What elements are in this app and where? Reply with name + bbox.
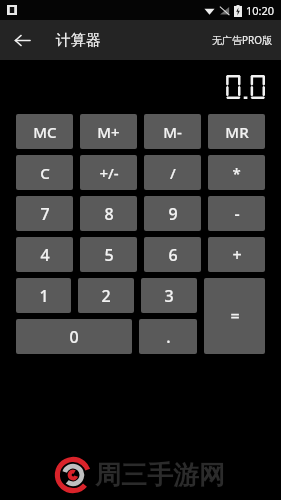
button[interactable]: 6: [144, 237, 201, 272]
staticText: 1: [39, 285, 49, 307]
button[interactable]: *: [208, 155, 265, 190]
staticText: *: [232, 163, 241, 183]
button[interactable]: 3: [141, 278, 197, 313]
button[interactable]: 5: [80, 237, 137, 272]
button[interactable]: MR: [208, 114, 265, 149]
staticText: 8: [104, 203, 114, 225]
staticText: =: [230, 305, 240, 327]
button[interactable]: +/-: [80, 155, 137, 190]
staticText: M-: [163, 122, 182, 142]
button[interactable]: /: [144, 155, 201, 190]
staticText: 6: [168, 244, 178, 266]
button[interactable]: 0: [16, 319, 132, 354]
button[interactable]: M-: [144, 114, 201, 149]
button[interactable]: -: [208, 196, 265, 231]
staticText: C: [40, 163, 50, 183]
staticText: 2: [101, 285, 111, 307]
staticText: 3: [164, 285, 174, 307]
staticText: 无广告PRO版: [212, 33, 273, 47]
staticText: +: [232, 244, 242, 266]
staticText: 7: [40, 203, 50, 225]
button[interactable]: M+: [80, 114, 137, 149]
button[interactable]: MC: [16, 114, 73, 149]
staticText: 计算器: [56, 31, 101, 50]
button[interactable]: 无广告PRO版: [204, 27, 281, 53]
staticText: .: [166, 326, 171, 348]
staticText: MC: [33, 122, 57, 142]
button[interactable]: 2: [78, 278, 134, 313]
staticText: 10:20: [246, 3, 275, 18]
staticText: 周三手游网: [95, 459, 225, 492]
button[interactable]: +: [208, 237, 265, 272]
staticText: 9: [168, 203, 178, 225]
button[interactable]: =: [204, 278, 265, 354]
button[interactable]: 7: [16, 196, 73, 231]
button[interactable]: 8: [80, 196, 137, 231]
staticText: 4: [40, 244, 50, 266]
button[interactable]: 1: [16, 278, 71, 313]
button[interactable]: .: [139, 319, 197, 354]
staticText: 5: [104, 244, 114, 266]
staticText: -: [234, 203, 240, 225]
staticText: +/-: [99, 163, 119, 183]
staticText: M+: [97, 122, 120, 142]
button[interactable]: C: [16, 155, 73, 190]
button[interactable]: Back: [6, 24, 38, 56]
button[interactable]: 4: [16, 237, 73, 272]
button[interactable]: 9: [144, 196, 201, 231]
staticText: MR: [225, 122, 249, 142]
staticText: 0: [69, 326, 79, 348]
staticText: /: [170, 163, 176, 183]
